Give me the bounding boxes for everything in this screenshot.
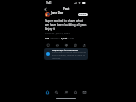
button[interactable]: Notifications: [72, 89, 79, 96]
staticText: 128: [45, 36, 50, 39]
button[interactable]: Follow: [78, 13, 88, 16]
button[interactable]: Subscribe to Premium: [44, 48, 88, 60]
button[interactable]: Profile photo: [45, 12, 50, 17]
button[interactable]: Messages: [81, 89, 88, 96]
staticText: 2,104: [61, 36, 68, 39]
staticText: 9:41: [46, 1, 52, 5]
staticText: Post: [63, 7, 70, 11]
button[interactable]: Bookmark: [73, 43, 77, 47]
button[interactable]: Communities: [63, 89, 70, 96]
staticText: 3:45 PM · Jun 12, 2024: [45, 31, 70, 34]
button[interactable]: Home: [44, 89, 51, 96]
staticText: Jane Doe: [51, 11, 64, 15]
staticText: Reposts: [50, 36, 60, 39]
staticText: Subscribe to Premium: [52, 48, 79, 51]
button[interactable]: Back: [43, 7, 48, 12]
button[interactable]: Search: [53, 89, 60, 96]
button[interactable]: Share: [82, 43, 86, 47]
button[interactable]: Like: [64, 43, 68, 47]
staticText: Subscribe to unlock new features and if …: [52, 51, 86, 60]
button[interactable]: Repost: [55, 43, 59, 47]
staticText: Follow: [79, 13, 87, 16]
staticText: Likes: [68, 36, 75, 39]
staticText: Super excited to share what we have been…: [45, 19, 87, 31]
button[interactable]: Reply: [46, 43, 50, 47]
